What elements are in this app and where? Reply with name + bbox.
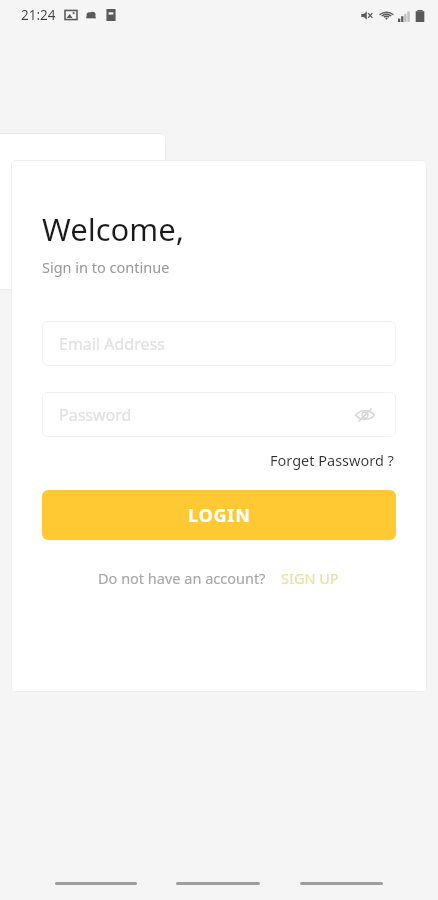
staticText: SIGN UP: [281, 568, 339, 588]
button[interactable]: Email Address: [42, 321, 396, 366]
button[interactable]: LOGIN: [42, 490, 396, 540]
button[interactable]: Back: [300, 882, 383, 885]
button[interactable]: Recents: [55, 882, 137, 885]
button[interactable]: Show password: [351, 401, 379, 429]
staticText: Password: [59, 404, 132, 426]
staticText: Forget Password ?: [270, 450, 394, 470]
staticText: 21:24: [21, 6, 56, 24]
button[interactable]: Forget Password ?: [268, 447, 396, 473]
button[interactable]: Home: [176, 882, 260, 885]
button[interactable]: SIGN UP: [279, 565, 341, 591]
staticText: Sign in to continue: [42, 257, 170, 277]
button[interactable]: Password: [42, 392, 396, 437]
staticText: LOGIN: [188, 503, 251, 528]
staticText: Email Address: [59, 333, 165, 355]
staticText: Do not have an account?: [98, 568, 266, 588]
staticText: Welcome,: [42, 208, 185, 250]
